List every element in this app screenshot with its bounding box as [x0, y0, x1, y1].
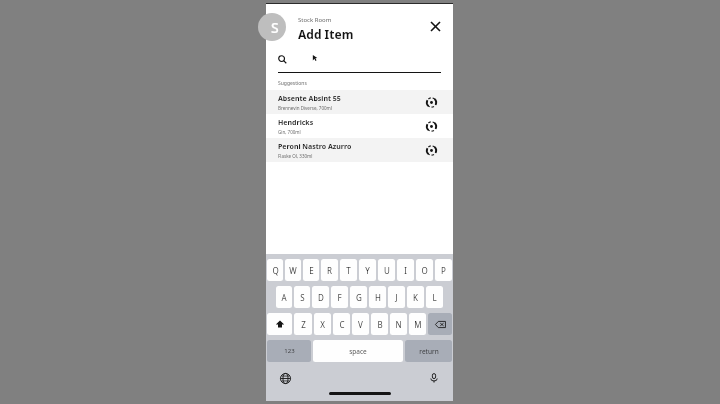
button[interactable]: Absente Absint 55	[266, 90, 453, 114]
button[interactable]: R	[321, 259, 338, 281]
staticText: I	[404, 265, 407, 276]
button[interactable]: I	[397, 259, 414, 281]
staticText: E	[309, 265, 314, 276]
staticText: H	[375, 292, 381, 303]
button[interactable]: B	[371, 313, 388, 335]
button[interactable]: L	[426, 286, 443, 308]
staticText: Add Item	[298, 26, 354, 42]
staticText: V	[358, 319, 363, 330]
staticText: A	[281, 292, 287, 303]
button[interactable]: Scan Peroni Nastro Azurro	[421, 140, 441, 160]
button[interactable]: Z	[294, 313, 312, 335]
button[interactable]: Shift	[267, 313, 292, 335]
staticText: Flaske Ol, 330ml	[278, 153, 313, 159]
button[interactable]: V	[352, 313, 369, 335]
staticText: Z	[301, 319, 306, 330]
staticText: Q	[272, 265, 279, 276]
staticText: P	[441, 265, 446, 276]
staticText: Stock Room	[298, 16, 332, 24]
button[interactable]: A	[276, 286, 292, 308]
button[interactable]: Scan Hendricks	[421, 116, 441, 136]
button[interactable]: K	[407, 286, 424, 308]
staticText: L	[432, 292, 437, 303]
button[interactable]: 123	[267, 340, 311, 362]
button[interactable]: W	[285, 259, 301, 281]
staticText: M	[414, 319, 422, 330]
staticText: S	[300, 292, 305, 303]
staticText: R	[327, 265, 332, 276]
staticText: 123	[284, 347, 295, 355]
button[interactable]: F	[331, 286, 348, 308]
button[interactable]: Dictate	[425, 369, 443, 387]
staticText: Brennevin Diverse, 700ml	[278, 105, 332, 111]
button[interactable]: U	[378, 259, 395, 281]
button[interactable]: T	[340, 259, 357, 281]
staticText: K	[413, 292, 418, 303]
button[interactable]: D	[312, 286, 329, 308]
button[interactable]: Close	[424, 15, 446, 37]
button[interactable]: O	[416, 259, 433, 281]
staticText: J	[395, 292, 398, 303]
button[interactable]: Search	[278, 49, 441, 73]
button[interactable]: M	[409, 313, 426, 335]
button[interactable]: Hendricks	[266, 114, 453, 138]
button[interactable]: Peroni Nastro Azurro	[266, 138, 453, 162]
staticText: B	[377, 319, 383, 330]
button[interactable]: N	[390, 313, 407, 335]
button[interactable]: Q	[267, 259, 283, 281]
button[interactable]: J	[388, 286, 405, 308]
staticText: N	[395, 319, 402, 330]
staticText: T	[346, 265, 351, 276]
button[interactable]: C	[333, 313, 350, 335]
staticText: F	[337, 292, 342, 303]
staticText: S	[271, 18, 279, 37]
staticText: X	[320, 319, 325, 330]
staticText: Absente Absint 55	[278, 94, 341, 104]
button[interactable]: S	[294, 286, 310, 308]
button[interactable]: space	[313, 340, 403, 362]
staticText: W	[289, 265, 297, 276]
button[interactable]: Change keyboard language	[276, 369, 294, 387]
staticText: Hendricks	[278, 118, 314, 128]
staticText: space	[349, 347, 367, 356]
button[interactable]: return	[405, 340, 452, 362]
staticText: Suggestions	[278, 80, 307, 87]
button[interactable]: P	[435, 259, 452, 281]
staticText: Peroni Nastro Azurro	[278, 142, 352, 152]
staticText: U	[384, 265, 390, 276]
staticText: return	[419, 347, 439, 356]
button[interactable]: Scan Absente Absint 55	[421, 92, 441, 112]
staticText: O	[421, 265, 428, 276]
staticText: Y	[365, 265, 370, 276]
button[interactable]: Y	[359, 259, 376, 281]
button[interactable]: Backspace	[428, 313, 452, 335]
staticText: C	[339, 319, 345, 330]
button[interactable]: E	[303, 259, 319, 281]
button[interactable]: G	[350, 286, 367, 308]
staticText: G	[356, 292, 362, 303]
staticText: D	[318, 292, 324, 303]
button[interactable]: H	[369, 286, 386, 308]
button[interactable]: X	[314, 313, 331, 335]
staticText: Gin, 700ml	[278, 129, 301, 135]
